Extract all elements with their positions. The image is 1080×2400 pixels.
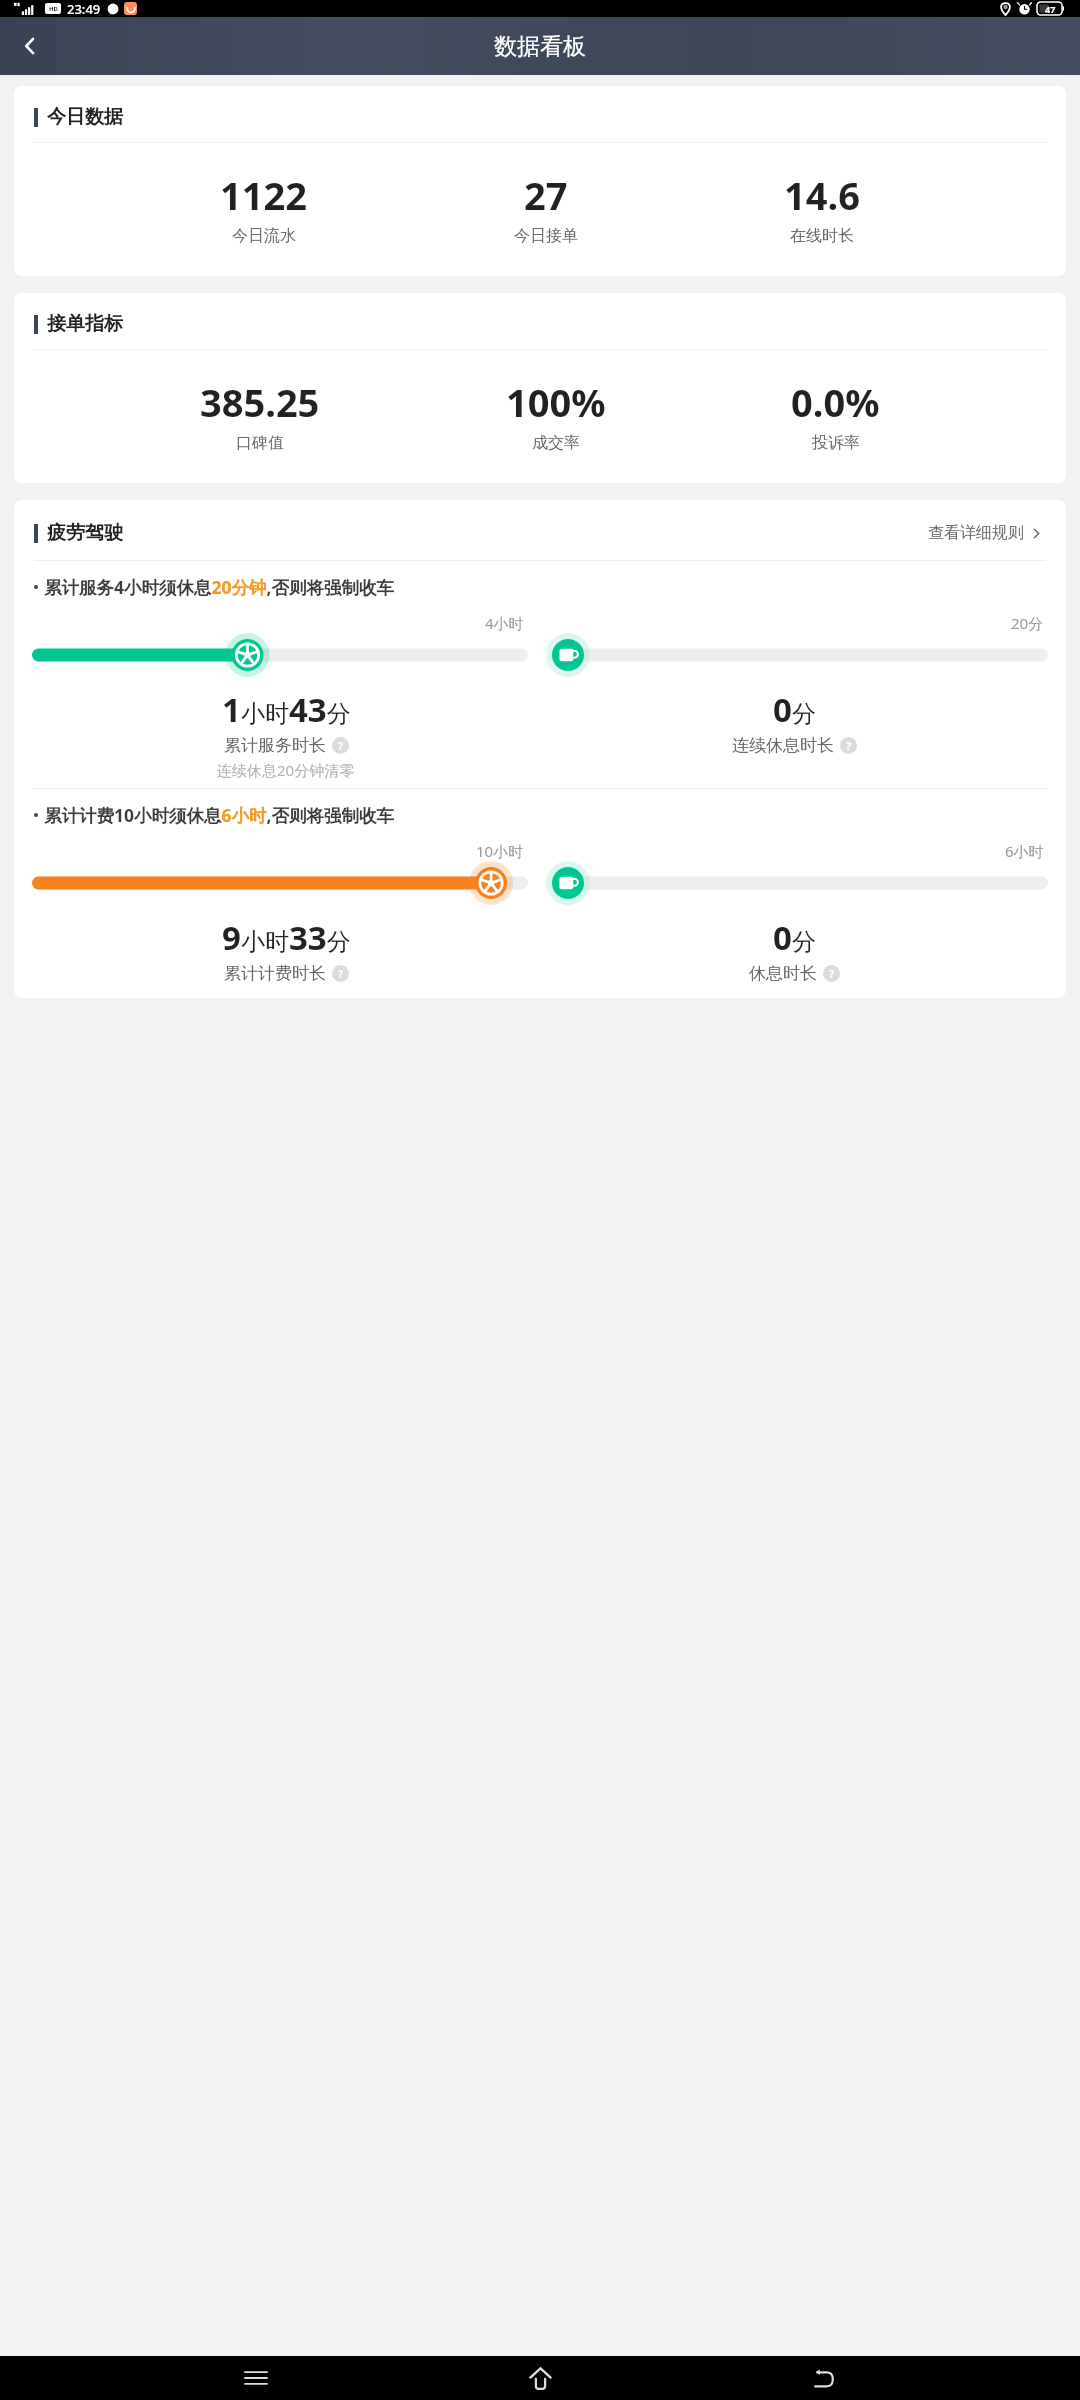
button[interactable]: 接单指标 — [14, 293, 1066, 483]
staticText: 成交率 — [532, 433, 580, 453]
staticText: 10小时 — [476, 841, 524, 861]
staticText: 6小时 — [1005, 841, 1044, 861]
staticText: 接单指标 — [47, 312, 123, 336]
button[interactable]: 今日数据 — [14, 86, 1066, 276]
button[interactable]: 最近任务 — [228, 2356, 284, 2400]
staticText: 休息时长 — [749, 963, 817, 984]
staticText: 47 — [1045, 3, 1056, 15]
staticText: 累计服务4小时须休息20分钟,否则将强制收车 — [44, 575, 395, 599]
staticText: 9小时33分 — [222, 915, 351, 960]
staticText: 0分 — [773, 915, 816, 960]
staticText: 0分 — [773, 687, 816, 732]
staticText: 今日接单 — [514, 226, 578, 246]
staticText: 23:49 — [67, 0, 101, 17]
staticText: 385.25 — [200, 376, 320, 428]
staticText: 口碑值 — [236, 433, 284, 453]
staticText: 今日流水 — [232, 226, 296, 246]
staticText: ? — [338, 738, 344, 753]
button[interactable]: 主页 — [512, 2356, 568, 2400]
staticText: 查看详细规则 — [928, 523, 1024, 543]
staticText: 0.0% — [791, 376, 880, 428]
staticText: 14.6 — [784, 169, 860, 221]
staticText: 累计服务时长 — [224, 735, 326, 756]
button[interactable]: 查看详细规则 — [924, 519, 1046, 547]
button[interactable]: 说明 — [840, 737, 857, 754]
staticText: 累计计费10小时须休息6小时,否则将强制收车 — [44, 803, 395, 827]
staticText: 27 — [524, 169, 568, 221]
staticText: ? — [846, 738, 852, 753]
staticText: 20分 — [1011, 613, 1044, 633]
button[interactable]: 返回 — [796, 2356, 852, 2400]
staticText: ? — [338, 966, 344, 981]
staticText: 4小时 — [485, 613, 524, 633]
staticText: 累计计费时长 — [224, 963, 326, 984]
staticText: 1122 — [220, 169, 307, 221]
staticText: 在线时长 — [790, 226, 854, 246]
button[interactable]: 说明 — [823, 965, 840, 982]
staticText: 数据看板 — [494, 32, 586, 61]
staticText: 投诉率 — [812, 433, 860, 453]
button[interactable]: 说明 — [332, 737, 349, 754]
staticText: 连续休息时长 — [732, 735, 834, 756]
button[interactable]: 返回 — [6, 22, 54, 70]
staticText: 连续休息20分钟清零 — [217, 760, 355, 780]
staticText: 疲劳驾驶 — [47, 521, 123, 545]
staticText: 1小时43分 — [222, 687, 351, 732]
button[interactable]: 说明 — [332, 965, 349, 982]
staticText: 今日数据 — [47, 105, 123, 129]
staticText: ? — [829, 966, 835, 981]
staticText: HD — [49, 5, 58, 13]
staticText: 100% — [506, 376, 606, 428]
